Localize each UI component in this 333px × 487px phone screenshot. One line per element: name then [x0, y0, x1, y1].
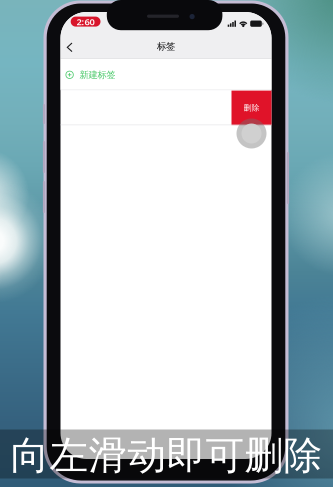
staticText: 2:60	[77, 15, 95, 28]
button[interactable]: Back	[62, 38, 82, 58]
button[interactable]: 删除	[231, 91, 271, 125]
staticText: 新建标签	[79, 69, 115, 81]
staticText: 向左滑动即可删除	[10, 432, 322, 479]
staticText: 删除	[243, 103, 259, 113]
staticText: 标签	[157, 41, 175, 52]
button[interactable]: Recording 2:60	[71, 17, 100, 27]
button[interactable]: 新建标签	[60, 59, 271, 90]
